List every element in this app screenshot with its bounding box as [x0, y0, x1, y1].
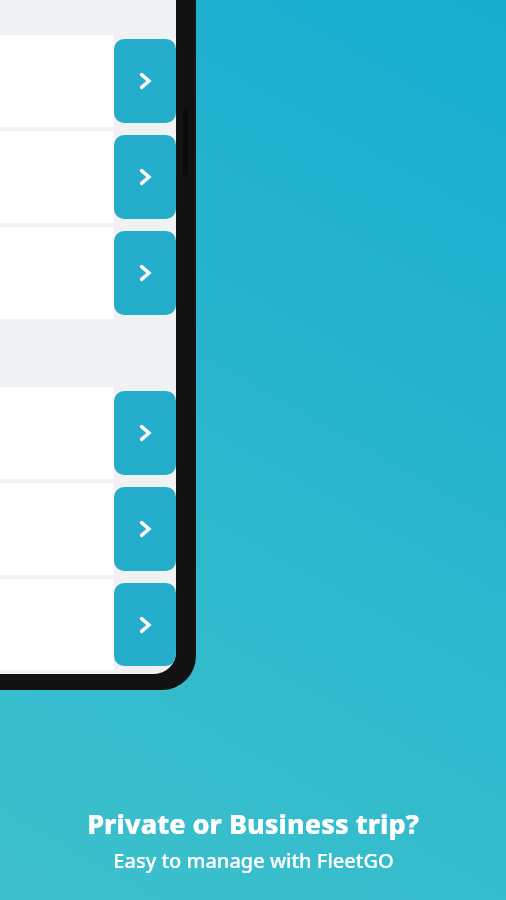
button[interactable]: 12.10 km [0, 579, 176, 670]
button[interactable]: 417.28 km [0, 387, 176, 479]
button[interactable]: 416.72 km [0, 483, 176, 575]
staticText: Easy to manage with FleetGO [113, 847, 394, 874]
button[interactable]: Open trip details [114, 39, 176, 123]
staticText: Private or Business trip? [87, 805, 419, 842]
button[interactable]: Open trip details [114, 391, 176, 475]
button[interactable]: Open trip details [114, 487, 176, 571]
button[interactable]: Open trip details [114, 583, 176, 666]
button[interactable]: 51.43 km [0, 131, 176, 223]
button[interactable]: 50.83 km [0, 227, 176, 319]
button[interactable]: Open trip details [114, 231, 176, 315]
button[interactable]: Open trip details [114, 135, 176, 219]
button[interactable]: 24.95 km [0, 35, 176, 127]
